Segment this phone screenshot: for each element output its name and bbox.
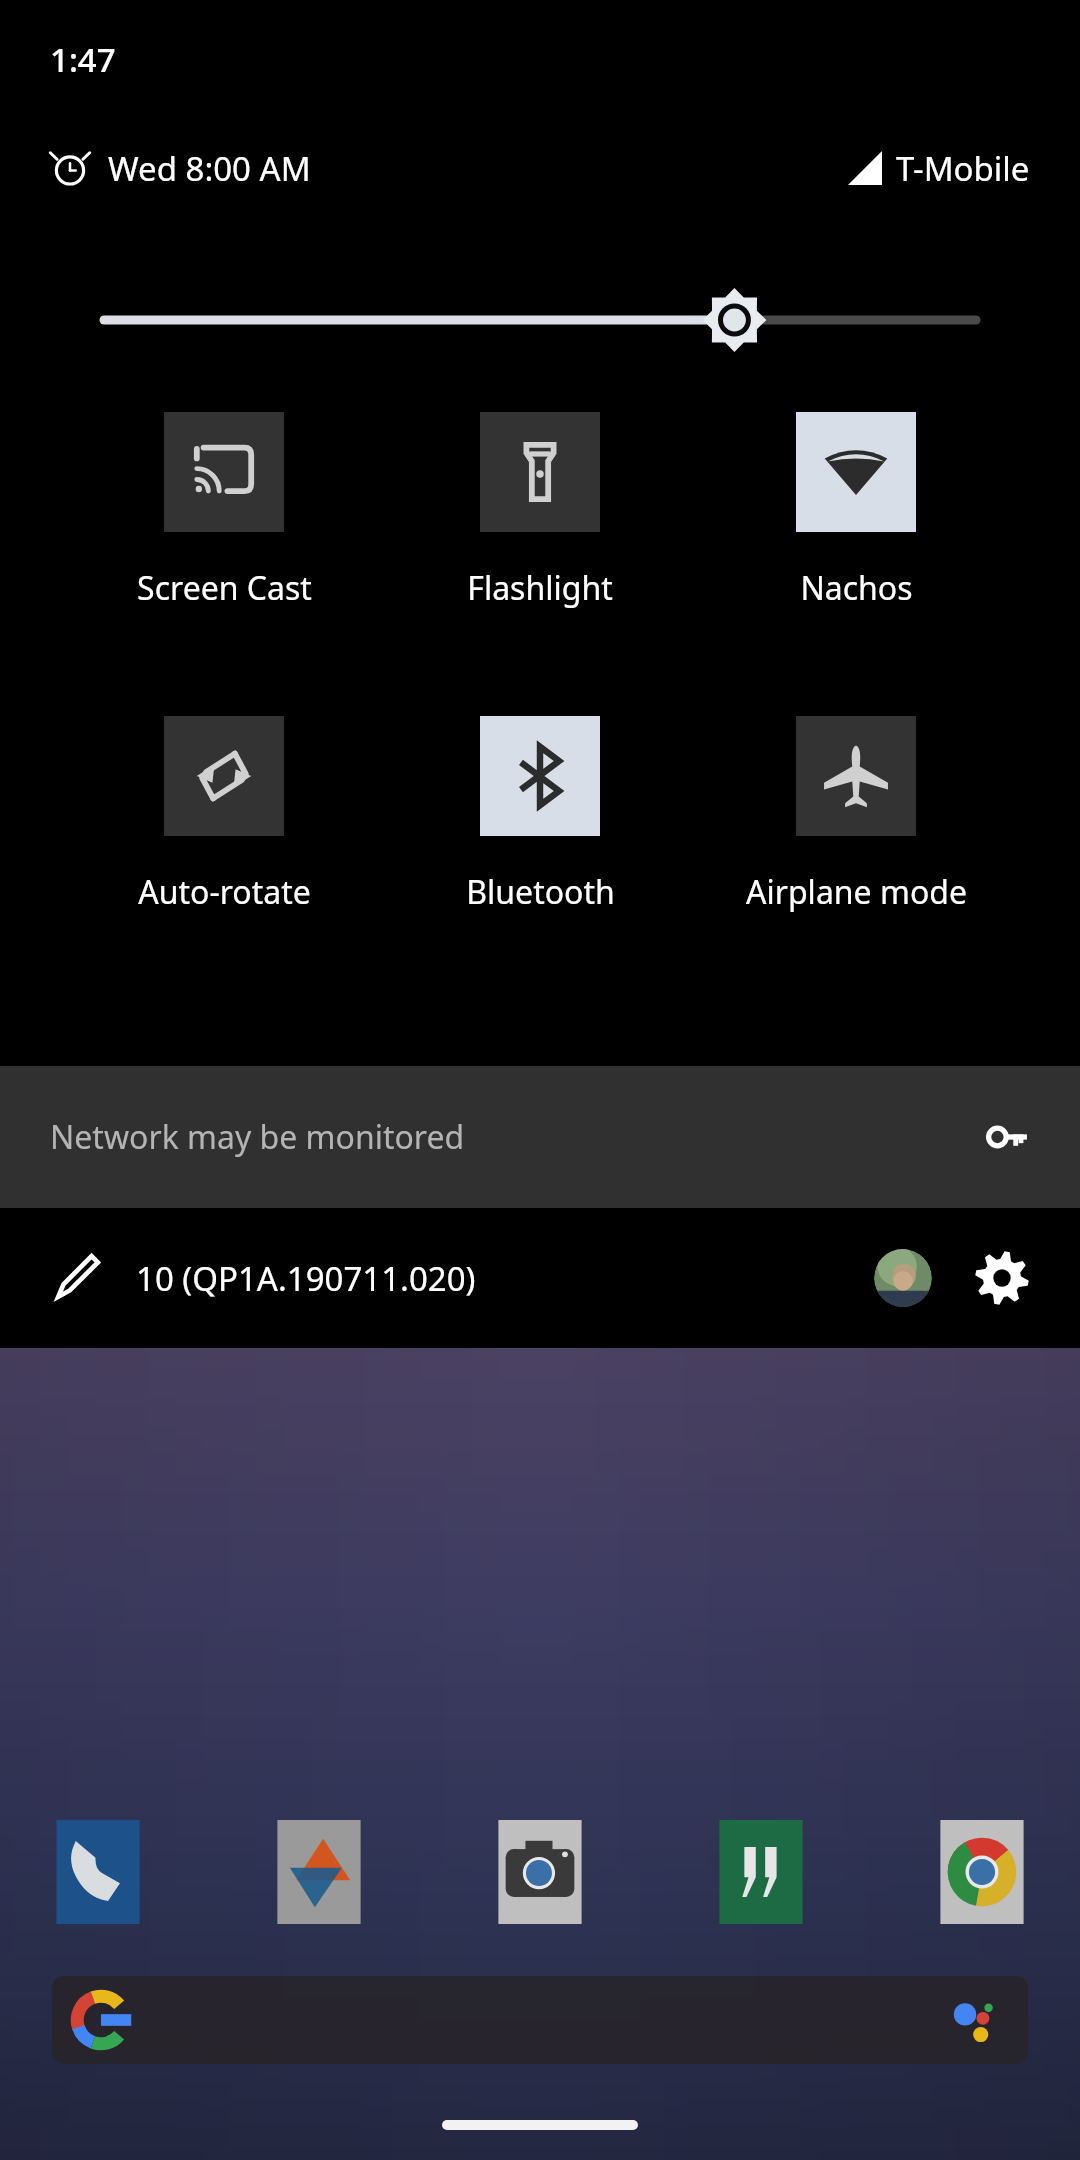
other: Google Assistant [946, 1992, 1002, 2048]
staticText: T-Mobile [896, 146, 1030, 191]
button[interactable]: Airplane mode [698, 716, 1014, 914]
staticText: Flashlight [467, 566, 613, 610]
staticText: Auto-rotate [138, 870, 311, 914]
staticText: 1:47 [50, 37, 116, 82]
button[interactable]: Screen Cast [66, 412, 382, 610]
staticText: Nachos [800, 566, 913, 610]
button[interactable]: Brightness [104, 282, 976, 358]
button[interactable]: Photos [267, 1820, 371, 1924]
staticText: Bluetooth [466, 870, 615, 914]
button[interactable]: Auto-rotate [66, 716, 382, 914]
button[interactable]: Chrome [930, 1820, 1034, 1924]
staticText: Wed 8:00 AM [108, 146, 311, 191]
button[interactable]: Settings [974, 1250, 1030, 1306]
button[interactable]: User account [874, 1249, 932, 1307]
button[interactable]: Edit [50, 1252, 102, 1304]
button[interactable]: Network may be monitored [50, 1066, 1030, 1208]
staticText: Network may be monitored [50, 1115, 465, 1159]
button[interactable]: Bluetooth [382, 716, 698, 914]
button[interactable]: Google Search [52, 1976, 1028, 2064]
button[interactable]: Phone [46, 1820, 150, 1924]
button[interactable]: Home [442, 2120, 638, 2130]
other: VPN [986, 1115, 1030, 1159]
other: Alarm [50, 148, 90, 188]
button[interactable]: Nachos [698, 412, 1014, 610]
staticText: Airplane mode [746, 870, 967, 914]
staticText: Screen Cast [137, 566, 312, 610]
button[interactable]: Flashlight [382, 412, 698, 610]
other: Google Search [74, 1993, 128, 2047]
button[interactable]: Camera [488, 1820, 592, 1924]
button[interactable]: Hangouts [709, 1820, 813, 1924]
staticText: 10 (QP1A.190711.020) [136, 1256, 476, 1301]
